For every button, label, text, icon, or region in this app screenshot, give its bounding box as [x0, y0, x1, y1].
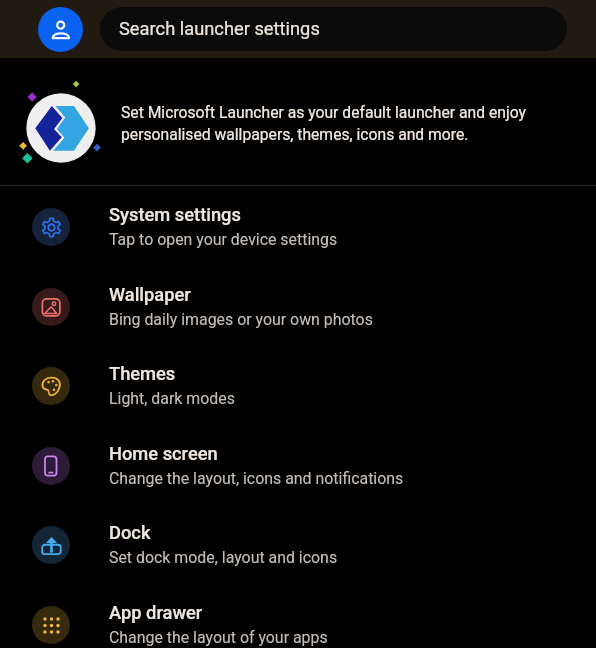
button[interactable]: System settings: [0, 186, 596, 266]
staticText: Change the layout, icons and notificatio…: [109, 469, 404, 488]
button[interactable]: App drawer: [0, 584, 596, 648]
staticText: Tap to open your device settings: [109, 230, 338, 249]
button[interactable]: Search launcher settings: [100, 7, 567, 51]
staticText: Set dock mode, layout and icons: [109, 548, 338, 567]
button[interactable]: Home screen: [0, 425, 596, 505]
staticText: Home screen: [109, 443, 218, 464]
staticText: System settings: [109, 204, 241, 225]
staticText: Themes: [109, 363, 176, 384]
staticText: Dock: [109, 522, 151, 543]
staticText: Bing daily images or your own photos: [109, 310, 373, 329]
staticText: App drawer: [109, 602, 203, 623]
staticText: Wallpaper: [109, 284, 191, 305]
button[interactable]: Account: [38, 7, 83, 52]
staticText: Light, dark modes: [109, 389, 235, 408]
button[interactable]: Themes: [0, 345, 596, 425]
staticText: personalised wallpapers, themes, icons a…: [121, 125, 469, 143]
button[interactable]: Dock: [0, 504, 596, 584]
button[interactable]: Set Microsoft Launcher as your default l…: [0, 57, 596, 185]
staticText: Search launcher settings: [119, 18, 320, 39]
staticText: Set Microsoft Launcher as your default l…: [121, 103, 526, 121]
button[interactable]: Wallpaper: [0, 266, 596, 346]
staticText: Change the layout of your apps: [109, 628, 328, 647]
